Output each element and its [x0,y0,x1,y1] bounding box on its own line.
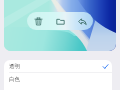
button[interactable]: Delete [27,12,49,30]
button[interactable]: Move to folder [49,12,71,30]
button[interactable]: 透明 [4,60,112,72]
staticText: 透明 [9,63,20,70]
staticText: 白色 [9,76,20,83]
button[interactable]: Share [71,12,93,30]
button[interactable]: 白色 [4,73,112,85]
